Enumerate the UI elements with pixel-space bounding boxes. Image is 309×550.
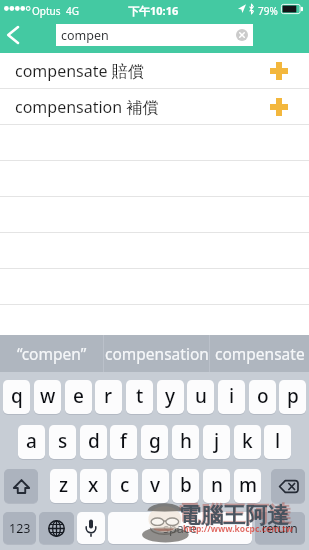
button[interactable]: f [110,425,137,459]
staticText: 4G [66,4,79,18]
button[interactable]: “compen” [0,335,103,372]
staticText: compensate 賠償 [15,60,144,82]
button[interactable]: i [218,380,245,414]
staticText: j [214,428,220,454]
button[interactable]: l [264,425,291,459]
staticText: i [229,383,235,409]
staticText: 電腦王阿達 [177,500,292,529]
button[interactable]: p [279,380,306,414]
button[interactable]: compensation 補償 [0,89,309,124]
staticText: u [195,383,207,409]
staticText: g [149,428,161,454]
button[interactable]: s [49,425,76,459]
staticText: s [58,428,68,454]
button[interactable]: a [18,425,45,459]
button[interactable]: compensate [210,335,309,372]
staticText: compensation 補償 [15,96,159,118]
button[interactable]: Add word [260,53,298,88]
staticText: v [150,472,161,498]
button[interactable]: Back [0,24,52,46]
button[interactable]: return [255,512,305,544]
button[interactable]: r [95,380,122,414]
staticText: x [88,472,99,498]
button[interactable]: Add word [260,89,298,124]
button[interactable]: z [50,469,77,503]
staticText: a [26,428,37,454]
staticText: o [257,383,269,409]
staticText: compen [61,27,109,44]
button[interactable]: Dictate [77,512,105,544]
staticText: l [275,428,281,454]
button[interactable]: u [187,380,214,414]
staticText: f [120,428,127,454]
staticText: p [287,383,299,409]
staticText: 下午10:16 [128,3,179,18]
staticText: http://www.kocpc.com.tw [183,523,294,535]
staticText: 79% [258,4,278,18]
button[interactable]: v [142,469,169,503]
staticText: Optus [32,4,61,18]
staticText: 電腦王阿達 [179,502,289,530]
button[interactable]: Change keyboard [39,512,74,544]
button[interactable]: c [111,469,138,503]
button[interactable]: o [249,380,276,414]
staticText: h [180,428,192,454]
staticText: m [239,472,257,498]
staticText: y [165,383,176,409]
button[interactable]: j [203,425,230,459]
button[interactable]: t [126,380,153,414]
staticText: compensate [215,343,305,364]
button[interactable]: h [172,425,199,459]
staticText: t [136,383,144,409]
button[interactable]: e [65,380,92,414]
button[interactable]: compensate 賠償 [0,53,309,88]
staticText: “compen” [17,343,87,364]
staticText: 123 [9,520,31,537]
button[interactable]: n [203,469,230,503]
staticText: w [40,383,56,409]
staticText: d [88,428,100,454]
staticText: compensation [105,343,209,364]
button[interactable]: Shift [4,469,38,503]
staticText: return [262,520,298,536]
button[interactable]: x [80,469,107,503]
button[interactable]: k [234,425,261,459]
button[interactable]: q [3,380,30,414]
staticText: n [211,472,223,498]
staticText: e [73,383,84,409]
button[interactable]: b [172,469,199,503]
button[interactable]: y [157,380,184,414]
button[interactable]: 123 [3,512,36,544]
button[interactable]: d [80,425,107,459]
button[interactable]: w [34,380,61,414]
button[interactable]: m [234,469,261,503]
staticText: z [59,472,69,498]
staticText: b [180,472,192,498]
button[interactable]: compen [56,24,253,46]
staticText: q [11,383,23,409]
button[interactable]: space [108,512,252,544]
staticText: c [120,472,130,498]
staticText: k [242,428,253,454]
button[interactable]: Backspace [271,469,305,503]
staticText: space [163,520,197,537]
button[interactable]: compensation [104,335,209,372]
button[interactable]: g [141,425,168,459]
staticText: r [104,383,113,409]
